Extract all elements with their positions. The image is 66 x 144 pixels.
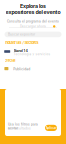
staticText: expositores del evento (5, 9, 60, 15)
staticText: Buscar expositor (8, 32, 35, 36)
staticText: tus resultados (8, 127, 31, 130)
button[interactable]: Buscar expositor (4, 32, 61, 37)
staticText: Stand 14 (13, 49, 27, 53)
staticText: Usa los filtros para acotar (8, 122, 38, 130)
staticText: Consulta el programa del evento (7, 19, 59, 23)
staticText: Publicidad (13, 67, 30, 71)
staticText: Aplicar (45, 126, 56, 130)
staticText: Descargar ahora (20, 24, 46, 28)
staticText: Oficial (4, 58, 15, 63)
staticText: Tecnologia y servicios (13, 52, 50, 56)
staticText: Explora los (20, 3, 46, 9)
staticText: Industrias / Sectores (4, 40, 38, 45)
button[interactable]: Aplicar (45, 125, 57, 131)
